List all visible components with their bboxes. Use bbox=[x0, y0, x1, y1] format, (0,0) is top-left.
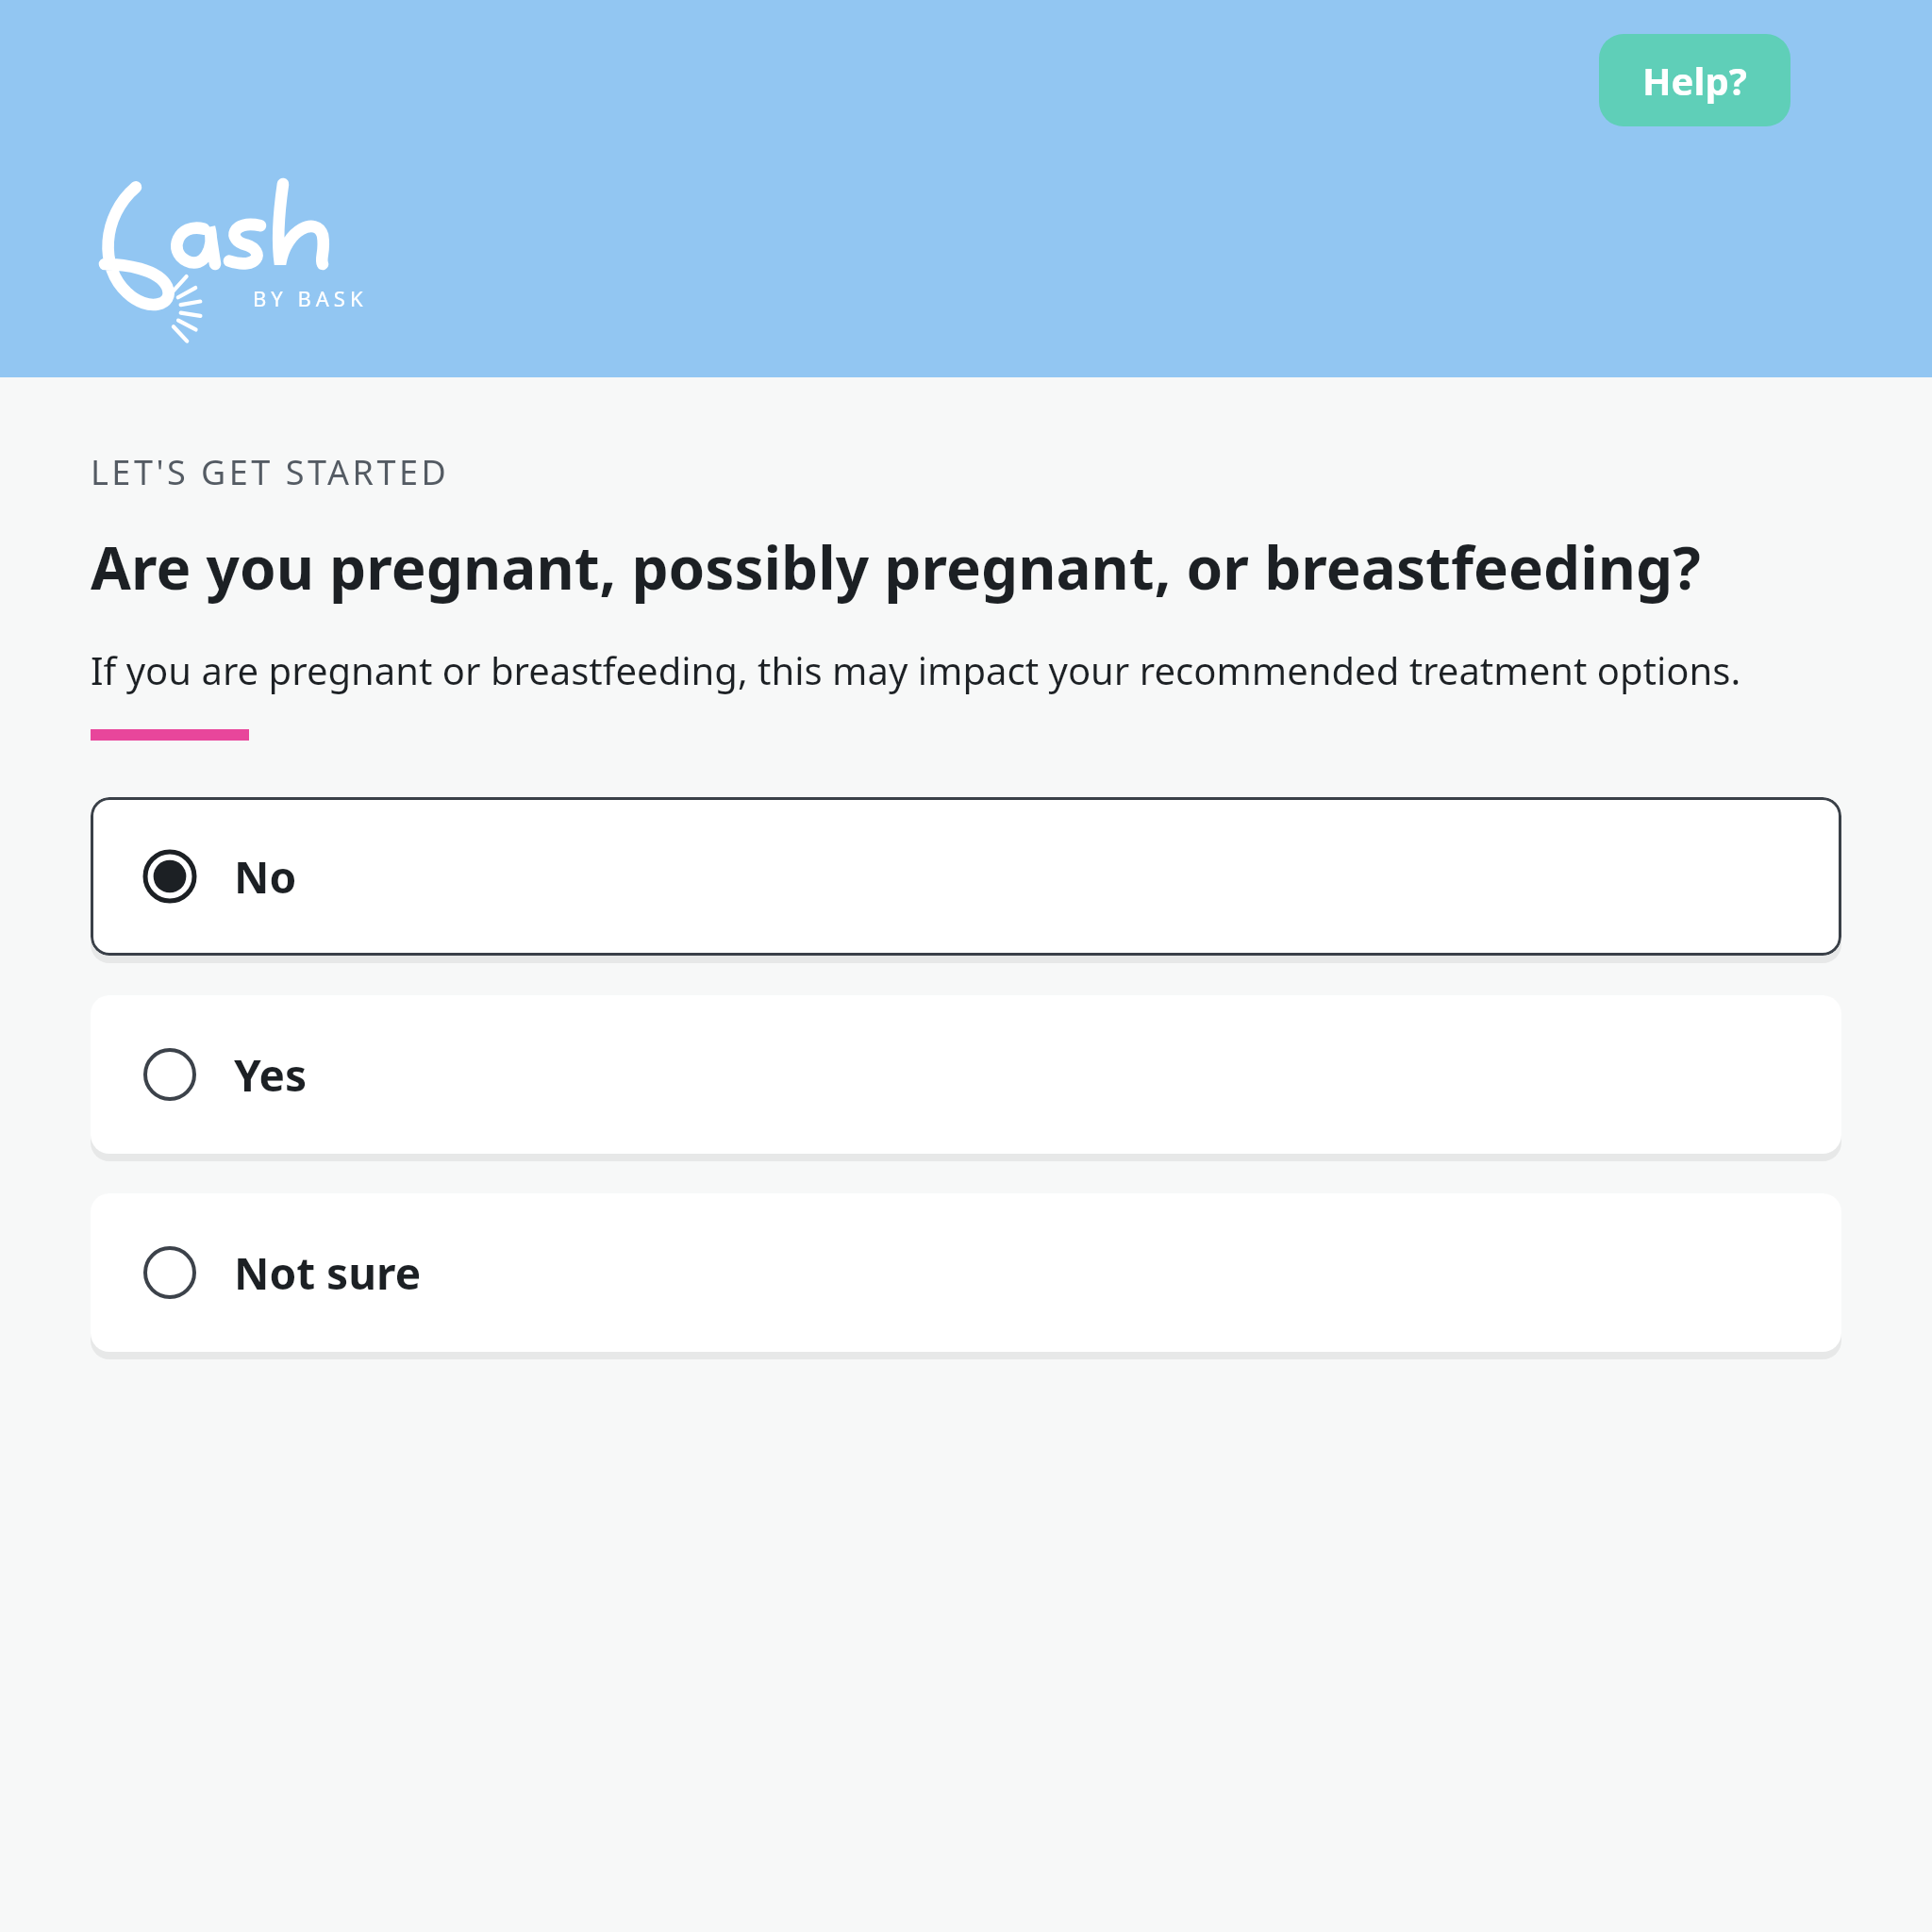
button[interactable]: Yes bbox=[91, 995, 1841, 1154]
staticText: LET'S GET STARTED bbox=[91, 449, 450, 495]
staticText: Help? bbox=[1642, 55, 1747, 106]
button[interactable]: Not sure bbox=[91, 1193, 1841, 1352]
staticText: BY BASK bbox=[253, 284, 368, 312]
button[interactable]: Help? bbox=[1599, 34, 1790, 126]
staticText: Are you pregnant, possibly pregnant, or … bbox=[91, 527, 1701, 607]
staticText: If you are pregnant or breastfeeding, th… bbox=[91, 644, 1741, 695]
staticText: Yes bbox=[234, 1045, 308, 1105]
staticText: Not sure bbox=[234, 1243, 422, 1303]
button[interactable]: No bbox=[91, 797, 1841, 956]
staticText: No bbox=[234, 847, 297, 907]
